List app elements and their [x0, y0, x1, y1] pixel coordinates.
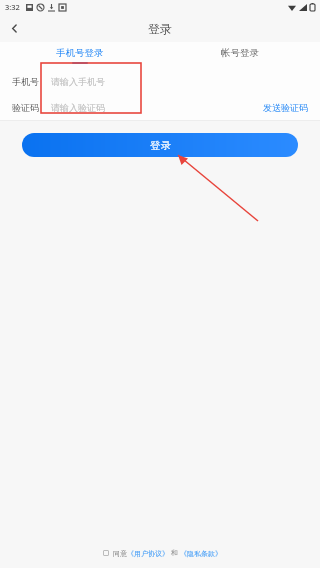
staticText: 登录 — [150, 139, 171, 152]
staticText: 和 — [169, 548, 180, 558]
button[interactable]: 《用户协议》 — [127, 549, 169, 558]
staticText: 请输入验证码 — [51, 102, 105, 113]
button[interactable]: 请输入手机号 — [51, 68, 308, 94]
staticText: 同意 — [113, 549, 127, 558]
button[interactable]: Agree checkbox — [99, 546, 113, 560]
staticText: 手机号登录 — [56, 47, 104, 59]
staticText: 登录 — [148, 21, 172, 36]
button[interactable]: 登录 — [22, 133, 298, 157]
staticText: 《用户协议》 — [127, 549, 169, 558]
button[interactable]: 帐号登录 — [160, 42, 320, 68]
button[interactable]: 发送验证码 — [263, 94, 308, 120]
staticText: 验证码 — [12, 102, 39, 113]
staticText: 发送验证码 — [263, 102, 308, 113]
staticText: 手机号 — [12, 76, 39, 87]
staticText: 请输入手机号 — [51, 76, 105, 87]
button[interactable]: 请输入验证码 — [51, 94, 263, 120]
staticText: 3:32 — [5, 2, 20, 12]
button[interactable]: 《隐私条款》 — [180, 549, 222, 558]
button[interactable]: Back — [0, 14, 28, 42]
button[interactable]: 手机号登录 — [0, 42, 160, 68]
staticText: 《隐私条款》 — [180, 549, 222, 558]
staticText: 帐号登录 — [221, 47, 259, 59]
